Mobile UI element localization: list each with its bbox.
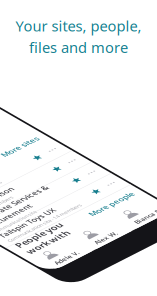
staticText: Your sites, people, [15, 16, 141, 35]
staticText: files and more [29, 37, 128, 57]
